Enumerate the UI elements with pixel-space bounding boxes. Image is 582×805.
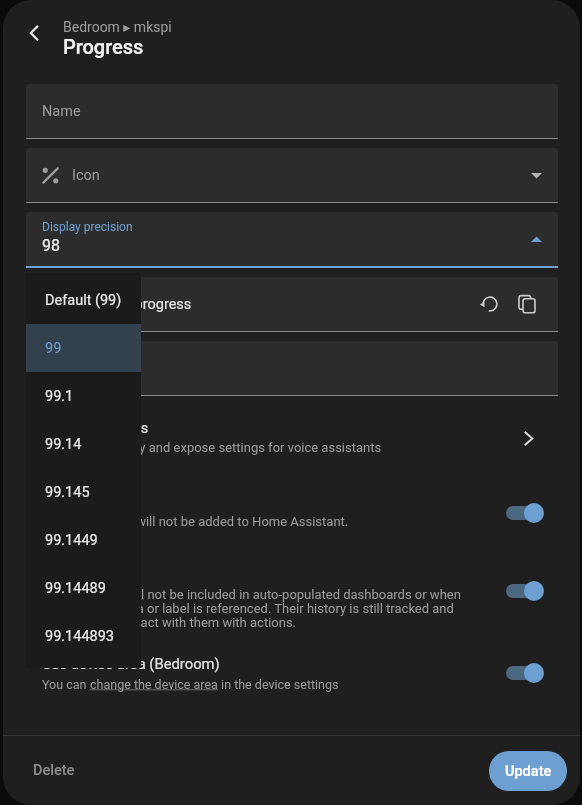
button[interactable]: sensor.mkspi_progress bbox=[26, 277, 558, 332]
staticText: Delete bbox=[33, 762, 75, 779]
button[interactable]: Back bbox=[12, 11, 56, 55]
staticText: in the device settings bbox=[218, 677, 339, 692]
button[interactable]: Delete bbox=[21, 754, 87, 787]
staticText: Bedroom ▸ mkspi bbox=[63, 19, 172, 35]
button[interactable]: 99.14489 bbox=[26, 564, 141, 612]
staticText: 99.1449 bbox=[45, 532, 98, 549]
button[interactable]: Toggle bbox=[503, 576, 555, 606]
staticText: Icon bbox=[72, 167, 100, 184]
staticText: 99.144893 bbox=[45, 628, 115, 645]
staticText: Manage the entity and expose settings fo… bbox=[42, 440, 382, 455]
button[interactable]: Voice assistants bbox=[42, 412, 542, 464]
button[interactable]: Toggle bbox=[503, 498, 555, 528]
staticText: 99.1 bbox=[45, 388, 74, 405]
button[interactable]: 99.14 bbox=[26, 420, 141, 468]
button[interactable]: Use device area (Bedroom) bbox=[42, 650, 542, 698]
button[interactable]: 99.1449 bbox=[26, 516, 141, 564]
button[interactable]: 99.145 bbox=[26, 468, 141, 516]
staticText: Voice assistants bbox=[42, 420, 149, 437]
button[interactable]: Toggle bbox=[503, 658, 555, 688]
button[interactable]: Restore bbox=[473, 287, 507, 321]
staticText: Default (99) bbox=[45, 292, 122, 309]
button[interactable]: Icon bbox=[26, 148, 558, 203]
staticText: sensor.mkspi_progress bbox=[42, 296, 192, 313]
staticText: 99.145 bbox=[45, 484, 90, 501]
staticText: Update bbox=[505, 763, 552, 780]
button[interactable]: Copy bbox=[510, 287, 544, 321]
staticText: You can bbox=[42, 677, 90, 692]
staticText: Display precision bbox=[42, 220, 133, 234]
staticText: abled, the entity will not be added to H… bbox=[42, 514, 480, 529]
staticText: Progress bbox=[63, 35, 144, 58]
staticText: change the device area bbox=[90, 677, 218, 692]
staticText: 99 bbox=[45, 340, 62, 357]
staticText: 99.14 bbox=[45, 436, 82, 453]
button[interactable]: Enabled bbox=[42, 492, 542, 529]
button[interactable]: Visible bbox=[42, 565, 542, 630]
button[interactable]: 99 bbox=[26, 324, 141, 372]
button[interactable]: Update bbox=[489, 751, 567, 791]
button[interactable]: Name bbox=[26, 84, 558, 139]
button[interactable]: 99.1 bbox=[26, 372, 141, 420]
button[interactable]: Display precision bbox=[26, 212, 558, 268]
staticText: 99.14489 bbox=[45, 580, 106, 597]
button[interactable] bbox=[26, 341, 558, 396]
button[interactable]: Default (99) bbox=[26, 276, 141, 324]
staticText: Enabled bbox=[42, 492, 94, 509]
staticText: 98 bbox=[42, 236, 60, 255]
staticText: Name bbox=[42, 103, 81, 120]
button[interactable]: 99.144893 bbox=[26, 612, 141, 660]
staticText: ible, the entity will not be included in… bbox=[42, 587, 512, 630]
staticText: Use device area (Bedroom) bbox=[42, 655, 220, 672]
